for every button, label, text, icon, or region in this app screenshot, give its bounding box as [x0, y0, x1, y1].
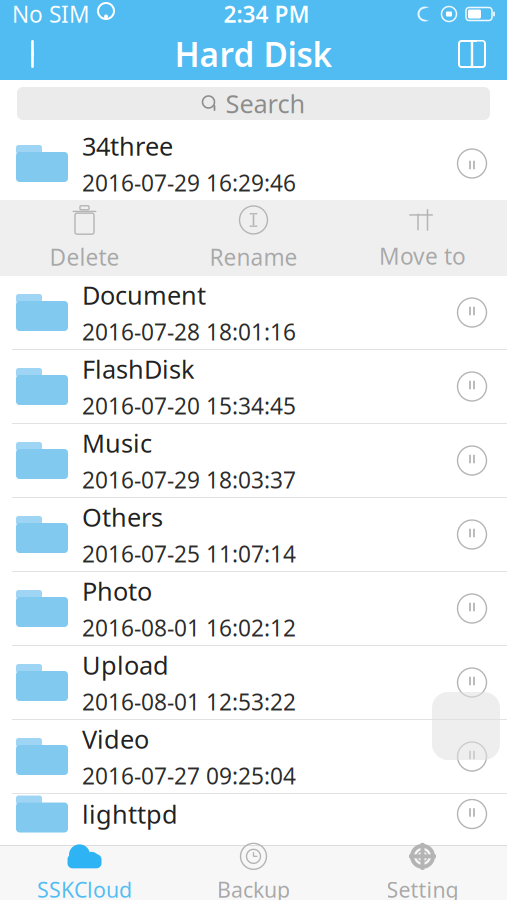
staticText: Hard Disk — [174, 32, 332, 76]
staticText: Move to — [379, 241, 466, 271]
button[interactable]: Upload — [0, 646, 507, 719]
button[interactable]: Search — [17, 87, 490, 120]
button[interactable]: 34three — [0, 127, 507, 200]
button[interactable]: Move to — [338, 200, 507, 276]
staticText: 2016-07-28 18:01:16 — [82, 317, 296, 347]
staticText: Backup — [217, 875, 290, 900]
staticText: Rename — [209, 242, 297, 272]
button[interactable]: Document — [0, 276, 507, 349]
staticText: Photo — [82, 574, 152, 608]
staticText: 2016-07-25 11:07:14 — [82, 539, 296, 569]
staticText: 2016-07-29 18:03:37 — [82, 465, 296, 495]
button[interactable]: Delete — [0, 200, 169, 276]
button[interactable]: Setting — [338, 846, 507, 900]
staticText: 34three — [82, 129, 173, 163]
button[interactable]: Back — [6, 28, 64, 80]
button[interactable]: FlashDisk — [0, 350, 507, 423]
button[interactable]: Video — [0, 720, 507, 793]
staticText: Search — [225, 87, 305, 120]
staticText: Upload — [82, 648, 169, 682]
button[interactable]: Backup — [169, 846, 338, 900]
staticText: SSKCloud — [37, 875, 132, 900]
staticText: 2:34 PM — [223, 0, 309, 29]
staticText: 2016-08-01 16:02:12 — [82, 613, 296, 643]
staticText: Setting — [386, 875, 458, 900]
staticText: Video — [82, 722, 149, 756]
staticText: Music — [82, 426, 152, 460]
button[interactable]: Others — [0, 498, 507, 571]
staticText: Delete — [49, 242, 119, 272]
staticText: Others — [82, 500, 163, 534]
button[interactable]: SSKCloud — [0, 846, 169, 900]
staticText: FlashDisk — [82, 352, 195, 386]
staticText: lighttpd — [82, 797, 178, 831]
button[interactable]: Photo — [0, 572, 507, 645]
staticText: No SIM — [12, 0, 90, 29]
button[interactable]: Rename — [169, 200, 338, 276]
staticText: 2016-07-20 15:34:45 — [82, 391, 296, 421]
button[interactable]: Music — [0, 424, 507, 497]
staticText: 2016-08-01 12:53:22 — [82, 687, 296, 717]
staticText: 2016-07-29 16:29:46 — [82, 168, 296, 198]
button[interactable]: Compose — [443, 28, 501, 80]
button[interactable]: lighttpd — [0, 794, 507, 834]
staticText: Document — [82, 278, 206, 312]
staticText: 2016-07-27 09:25:04 — [82, 761, 296, 791]
